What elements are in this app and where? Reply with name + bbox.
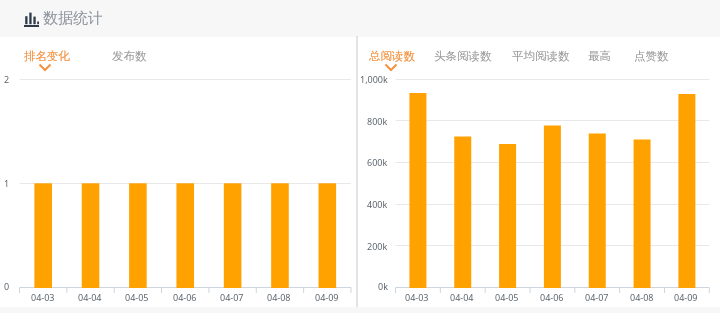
staticText: 800k	[367, 115, 388, 127]
button[interactable]: 头条阅读数	[434, 46, 492, 66]
staticText: 平均阅读数	[512, 49, 570, 63]
button[interactable]: 排名变化	[24, 46, 70, 66]
staticText: 04-06	[540, 291, 564, 303]
staticText: 最高	[588, 49, 611, 63]
staticText: 04-05	[495, 291, 519, 303]
staticText: 04-03	[31, 291, 55, 303]
staticText: 04-05	[125, 291, 149, 303]
button[interactable]: 发布数	[112, 46, 147, 66]
staticText: 04-04	[450, 291, 474, 303]
staticText: 04-03	[405, 291, 429, 303]
button[interactable]: 最高	[588, 46, 611, 66]
staticText: 04-09	[315, 291, 339, 303]
staticText: 点赞数	[634, 49, 669, 63]
staticText: 200k	[367, 240, 388, 252]
staticText: 排名变化	[24, 49, 70, 63]
staticText: 04-06	[173, 291, 197, 303]
staticText: 04-08	[630, 291, 654, 303]
staticText: 总阅读数	[369, 49, 415, 63]
button[interactable]: 总阅读数	[369, 46, 415, 66]
button[interactable]: 点赞数	[634, 46, 669, 66]
staticText: 04-08	[267, 291, 291, 303]
button[interactable]: 平均阅读数	[512, 46, 570, 66]
staticText: 头条阅读数	[434, 49, 492, 63]
staticText: 数据统计	[43, 9, 103, 28]
staticText: 600k	[367, 156, 388, 168]
staticText: 04-07	[585, 291, 609, 303]
staticText: 400k	[367, 198, 388, 210]
staticText: 0	[4, 280, 10, 292]
staticText: 04-09	[674, 291, 698, 303]
staticText: 04-04	[78, 291, 102, 303]
staticText: 发布数	[112, 49, 147, 63]
staticText: 1	[4, 177, 10, 189]
staticText: 1,000k	[360, 73, 388, 85]
staticText: 2	[4, 73, 10, 85]
staticText: 0k	[378, 280, 388, 292]
staticText: 04-07	[220, 291, 244, 303]
